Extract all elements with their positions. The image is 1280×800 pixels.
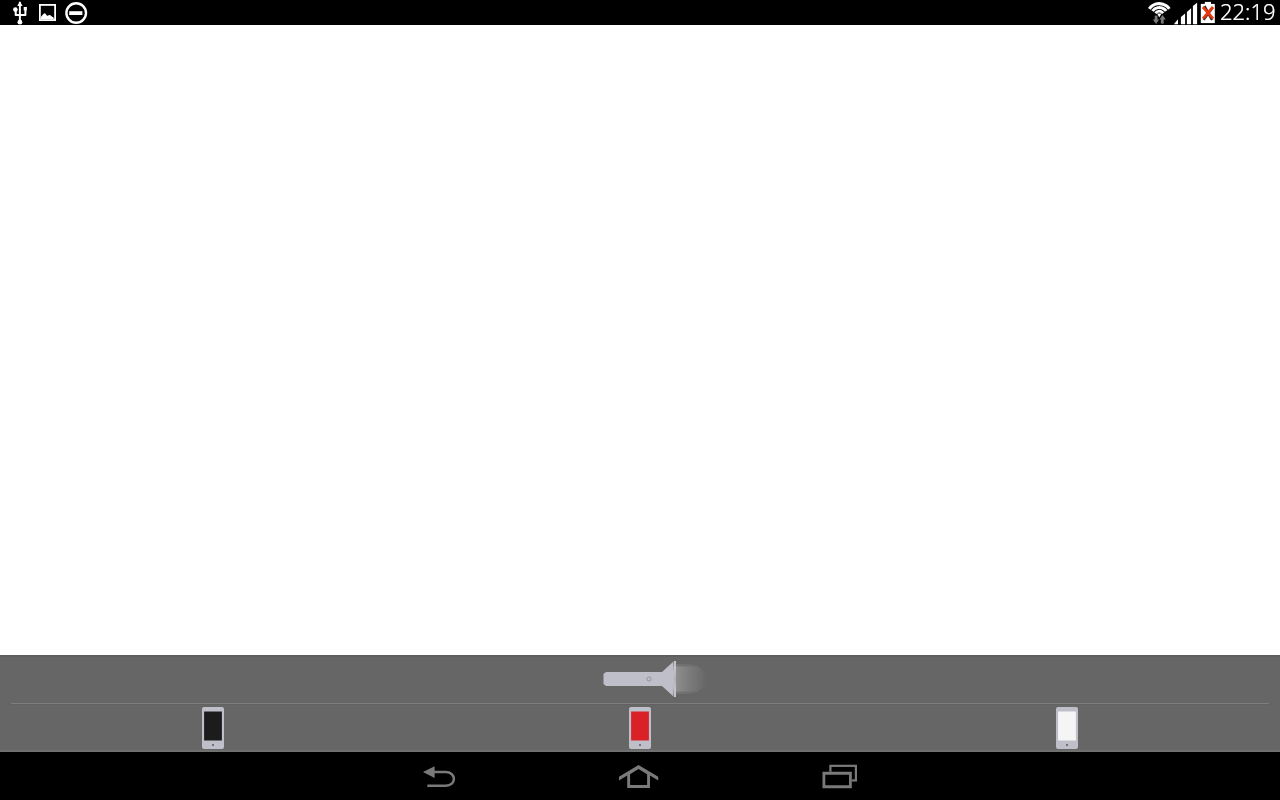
- button[interactable]: Red screen: [426, 705, 853, 751]
- button[interactable]: Recent apps: [773, 752, 905, 800]
- button[interactable]: White screen: [853, 705, 1280, 751]
- staticText: 22:19: [1220, 0, 1276, 21]
- button[interactable]: Back: [373, 752, 505, 800]
- button[interactable]: Flashlight: [603, 661, 707, 697]
- button[interactable]: Home: [573, 752, 705, 800]
- button[interactable]: Black screen: [0, 705, 426, 751]
